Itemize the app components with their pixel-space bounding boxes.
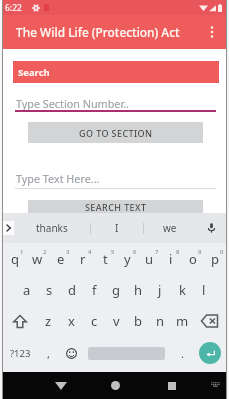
staticText: b (134, 312, 142, 330)
staticText: v (113, 312, 120, 330)
staticText: y (124, 250, 131, 268)
button[interactable]: w (26, 243, 49, 274)
button[interactable]: b (127, 305, 149, 337)
staticText: The Wild Life (Protection) Act (16, 24, 180, 40)
button[interactable]: thanks (14, 213, 90, 243)
button[interactable]: a (15, 274, 38, 305)
staticText: ?123 (10, 347, 31, 360)
staticText: l (202, 281, 206, 299)
staticText: i (169, 250, 173, 268)
button[interactable]: GO TO SECTION (28, 122, 203, 143)
button[interactable]: p (204, 243, 226, 274)
staticText: GO TO SECTION (79, 127, 153, 139)
button[interactable]: z (37, 305, 60, 337)
staticText: , (47, 346, 50, 361)
button[interactable]: y (116, 243, 138, 274)
button[interactable]: n (149, 305, 171, 337)
staticText: m (176, 312, 189, 330)
button[interactable]: j (149, 274, 171, 305)
staticText: w (32, 250, 43, 268)
button[interactable]: h (127, 274, 149, 305)
button[interactable]: c (83, 305, 105, 337)
staticText: Type Section Number.. (16, 96, 129, 111)
staticText: j (158, 281, 162, 299)
button[interactable]: Delete (193, 305, 226, 337)
button[interactable]: Switch keyboard (202, 372, 228, 399)
staticText: r (80, 250, 86, 268)
staticText: z (45, 312, 52, 330)
button[interactable]: ?123 (3, 337, 37, 369)
staticText: t (103, 250, 108, 268)
staticText: f (92, 281, 97, 299)
button[interactable]: i (160, 243, 182, 274)
staticText: SEARCH TEXT (85, 201, 147, 213)
button[interactable]: u (138, 243, 160, 274)
button[interactable]: v (105, 305, 127, 337)
button[interactable]: . (171, 337, 193, 369)
button[interactable]: More suggestions (3, 221, 14, 235)
staticText: g (112, 281, 120, 299)
button[interactable]: Home (102, 372, 129, 399)
staticText: k (179, 281, 186, 299)
staticText: 1 (20, 248, 24, 256)
button[interactable]: t (94, 243, 116, 274)
staticText: u (145, 250, 154, 268)
button[interactable]: k (171, 274, 193, 305)
staticText: . (181, 346, 184, 361)
button[interactable]: x (60, 305, 83, 337)
staticText: 0 (220, 248, 224, 256)
button[interactable]: , (37, 337, 60, 369)
button[interactable]: g (105, 274, 127, 305)
staticText: 9 (198, 248, 202, 256)
button[interactable]: we (144, 213, 196, 243)
button[interactable]: Shift (3, 305, 37, 337)
staticText: o (189, 250, 197, 268)
button[interactable]: SEARCH TEXT (28, 200, 203, 214)
staticText: Type Text Here... (16, 171, 100, 186)
staticText: e (57, 250, 65, 268)
button[interactable]: I (91, 213, 143, 243)
staticText: s (46, 281, 53, 299)
staticText: x (68, 312, 75, 330)
staticText: Search (18, 66, 50, 79)
button[interactable]: Emoji (60, 337, 82, 369)
button[interactable]: f (83, 274, 105, 305)
staticText: p (211, 250, 219, 268)
staticText: 4 (88, 248, 92, 256)
staticText: we (163, 221, 177, 235)
button[interactable]: Enter (193, 337, 226, 369)
staticText: 2 (43, 248, 47, 256)
button[interactable]: m (171, 305, 193, 337)
staticText: n (156, 312, 165, 330)
staticText: q (11, 250, 19, 268)
staticText: a (23, 281, 31, 299)
staticText: 3 (66, 248, 70, 256)
staticText: thanks (36, 221, 68, 235)
staticText: h (134, 281, 143, 299)
button[interactable]: l (193, 274, 215, 305)
button[interactable]: q (3, 243, 26, 274)
staticText: d (68, 281, 76, 299)
button[interactable]: e (49, 243, 72, 274)
button[interactable]: o (182, 243, 204, 274)
staticText: 8 (176, 248, 180, 256)
button[interactable]: s (38, 274, 61, 305)
button[interactable]: Recent apps (158, 372, 185, 399)
staticText: I (115, 221, 119, 235)
button[interactable]: d (61, 274, 83, 305)
button[interactable]: Space (82, 337, 171, 369)
staticText: 5 (111, 248, 115, 256)
staticText: c (91, 312, 98, 330)
button[interactable]: More options (200, 20, 224, 44)
button[interactable]: Voice input (196, 213, 226, 243)
staticText: 6:22 (5, 2, 22, 14)
button[interactable]: r (72, 243, 94, 274)
staticText: 6 (133, 248, 137, 256)
staticText: 7 (155, 248, 159, 256)
button[interactable]: Back (47, 372, 74, 399)
